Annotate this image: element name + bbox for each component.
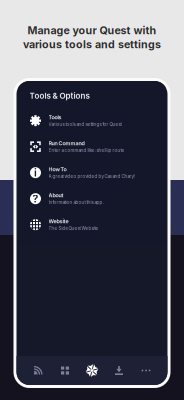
- button[interactable]: i: [18, 160, 165, 186]
- button[interactable]: ?: [18, 186, 165, 212]
- staticText: About: [48, 192, 63, 199]
- button[interactable]: Website: [18, 212, 165, 238]
- staticText: various tools and settings: [23, 38, 161, 51]
- staticText: Enter a command like: shell:ip route: [48, 148, 124, 153]
- staticText: i: [34, 166, 37, 179]
- button[interactable]: Tools: [18, 108, 165, 134]
- staticText: How To: [48, 166, 66, 173]
- staticText: Tools: [48, 114, 61, 121]
- staticText: Run Command: [48, 140, 84, 147]
- button[interactable]: Run Command: [18, 134, 165, 160]
- button[interactable]: Devices: [24, 356, 51, 385]
- button[interactable]: SideQuest: [78, 356, 105, 385]
- staticText: A great video provided by Cas and Chary!: [48, 174, 134, 179]
- button[interactable]: Downloads: [105, 356, 132, 385]
- staticText: Various tools and settings for Quest: [48, 122, 121, 127]
- staticText: The SideQuest Website: [48, 226, 98, 231]
- staticText: Manage your Quest with: [27, 24, 156, 37]
- staticText: Information about this app.: [48, 200, 103, 205]
- staticText: Tools & Options: [29, 91, 89, 101]
- button[interactable]: Apps: [51, 356, 78, 385]
- staticText: ?: [32, 192, 38, 205]
- button[interactable]: More: [132, 356, 159, 385]
- staticText: Website: [48, 218, 68, 225]
